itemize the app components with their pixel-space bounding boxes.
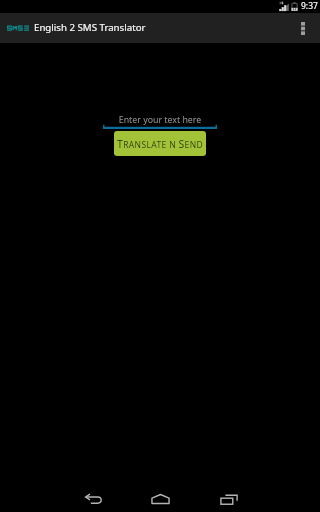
button[interactable]: Recent apps [206,486,251,512]
button[interactable]: TRANSLATE N SEND [114,131,206,156]
staticText: 9:37 [301,0,318,12]
staticText: TRANSLATE N SEND [117,137,204,151]
button[interactable]: More options [292,13,314,43]
button[interactable]: Enter your text here [103,114,217,131]
staticText: Enter your text here [103,114,217,126]
button[interactable]: Back [70,486,115,512]
button[interactable]: Home [138,486,183,512]
staticText: English 2 SMS Translator [34,21,146,34]
